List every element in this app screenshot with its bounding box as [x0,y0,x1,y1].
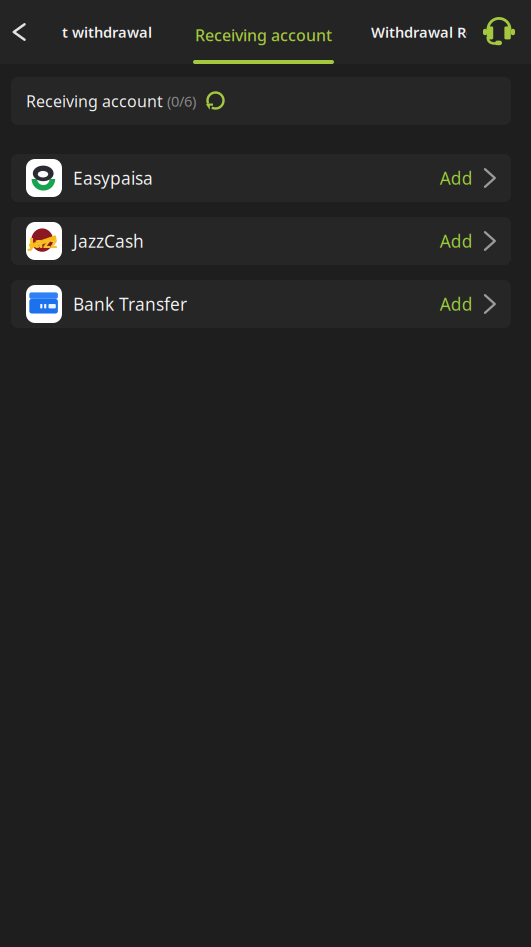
staticText: Receiving account [195,24,332,46]
staticText: Add [440,292,473,315]
button[interactable]: Customer support [467,0,531,64]
staticText: Jazz [29,232,57,252]
staticText: Add [440,229,473,252]
button[interactable]: Easypaisa [11,154,511,202]
button[interactable]: Jazz [11,217,511,265]
button[interactable]: Bank Transfer [11,280,511,328]
button[interactable]: t withdrawal [42,0,172,64]
button[interactable]: Back [0,0,46,64]
button[interactable]: Refresh [196,85,226,116]
staticText: Easypaisa [73,166,153,189]
button[interactable]: Withdrawal Record [355,0,499,64]
staticText: JazzCash [73,229,144,252]
button[interactable]: Receiving account [172,0,355,64]
staticText: Withdrawal Record [371,22,506,42]
staticText: Bank Transfer [73,292,187,315]
staticText: Add [440,166,473,189]
staticText: Receiving account [26,90,163,112]
staticText: t withdrawal [62,22,152,42]
staticText: (0/6) [163,91,196,111]
